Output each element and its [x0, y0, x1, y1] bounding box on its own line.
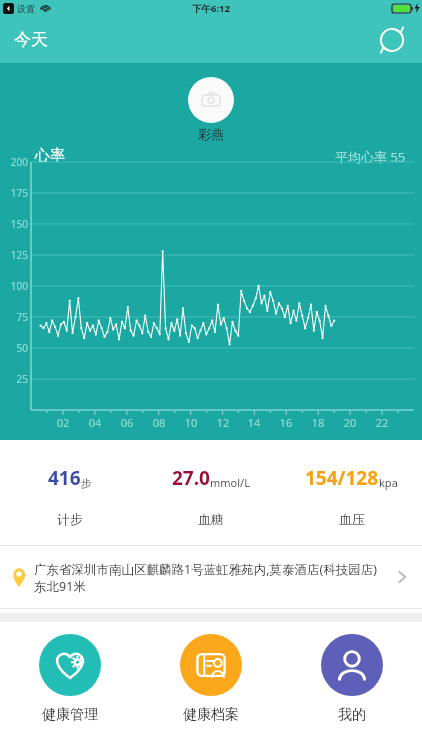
- staticText: 04: [86, 415, 104, 430]
- button[interactable]: 27.0: [140, 440, 281, 545]
- staticText: 平均心率 55: [335, 148, 406, 166]
- staticText: 彩燕: [198, 126, 224, 142]
- button[interactable]: Refresh: [374, 22, 410, 58]
- staticText: 27.0: [172, 465, 210, 491]
- staticText: 75: [2, 310, 28, 324]
- staticText: 25: [2, 372, 28, 386]
- staticText: 下午6:12: [192, 2, 230, 15]
- staticText: mmol/L: [210, 475, 250, 490]
- staticText: 100: [2, 279, 28, 293]
- staticText: 广东省深圳市南山区麒麟路1号蓝虹雅苑内,莫泰酒店(科技园店)东北91米: [34, 561, 386, 594]
- staticText: 150: [2, 217, 28, 231]
- staticText: 02: [54, 415, 72, 430]
- staticText: 血糖: [198, 511, 224, 527]
- staticText: 血压: [339, 511, 365, 527]
- staticText: 今天: [14, 29, 48, 50]
- staticText: 18: [309, 415, 327, 430]
- button[interactable]: 416: [0, 440, 140, 545]
- staticText: 计步: [57, 511, 83, 527]
- staticText: kpa: [379, 475, 398, 490]
- staticText: 20: [341, 415, 359, 430]
- button[interactable]: 广东省深圳市南山区麒麟路1号蓝虹雅苑内,莫泰酒店(科技园店)东北91米: [0, 546, 422, 608]
- button[interactable]: 健康管理: [0, 622, 140, 750]
- button[interactable]: Change photo: [188, 77, 234, 123]
- staticText: 22: [373, 415, 391, 430]
- staticText: 06: [118, 415, 136, 430]
- staticText: 设置: [17, 3, 35, 14]
- staticText: 10: [182, 415, 200, 430]
- button[interactable]: 我的: [281, 622, 422, 750]
- button[interactable]: 健康档案: [140, 622, 281, 750]
- staticText: 175: [2, 186, 28, 200]
- staticText: 125: [2, 248, 28, 262]
- staticText: 健康档案: [183, 706, 239, 724]
- staticText: 50: [2, 341, 28, 355]
- staticText: 154/128: [305, 465, 379, 491]
- button[interactable]: 154/128: [281, 440, 422, 545]
- staticText: 12: [214, 415, 232, 430]
- staticText: 08: [150, 415, 168, 430]
- staticText: 心率: [35, 146, 65, 165]
- staticText: 健康管理: [42, 706, 98, 724]
- staticText: 16: [277, 415, 295, 430]
- staticText: 步: [81, 476, 92, 490]
- staticText: 416: [48, 465, 81, 491]
- staticText: 14: [245, 415, 263, 430]
- staticText: 我的: [338, 706, 366, 724]
- staticText: 200: [2, 155, 28, 169]
